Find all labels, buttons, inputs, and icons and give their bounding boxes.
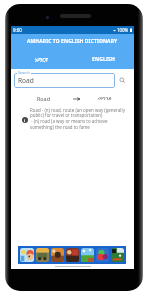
staticText: አማርኛ <box>35 56 48 63</box>
staticText: Road <box>18 76 34 85</box>
button[interactable]: Road <box>14 73 115 88</box>
button[interactable]: Road <box>11 92 134 105</box>
staticText: ENGLISH <box>92 56 115 63</box>
staticText: Search <box>18 70 30 75</box>
button[interactable]: ENGLISH <box>72 50 134 69</box>
button[interactable]: Search <box>119 77 126 84</box>
button[interactable] <box>18 246 126 264</box>
staticText: 100% <box>117 27 129 33</box>
staticText: መንገድ <box>98 96 112 101</box>
staticText: AMHARIC TO ENGLISH DICTIONARY <box>27 38 118 45</box>
button[interactable]: አማርኛ <box>11 50 72 69</box>
staticText: Road - (n) road, route (an open way (gen… <box>30 107 125 131</box>
staticText: 9:00 <box>13 27 22 33</box>
staticText: i <box>24 118 26 123</box>
button[interactable]: Road - (n) road, route (an open way (gen… <box>30 107 130 131</box>
staticText: Road <box>37 95 50 102</box>
